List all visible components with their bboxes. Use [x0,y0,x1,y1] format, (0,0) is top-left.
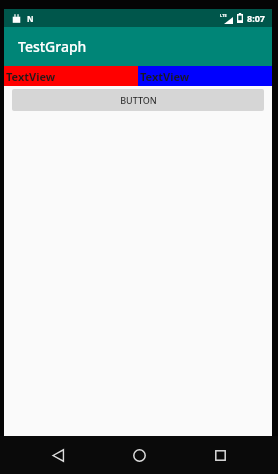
button[interactable]: TextView [4,66,138,86]
staticText: LTE [220,13,227,18]
staticText: BUTTON [120,94,157,106]
button[interactable]: TextView [138,66,272,86]
staticText: TestGraph [18,37,87,56]
staticText: TextView [6,69,56,84]
button[interactable]: Back [35,436,81,474]
staticText: 8:07 [247,12,265,24]
staticText: TextView [140,69,190,84]
button[interactable]: Home [116,436,162,474]
button[interactable]: BUTTON [12,89,264,111]
staticText: N [27,13,34,24]
button[interactable]: Recent apps [197,436,243,474]
